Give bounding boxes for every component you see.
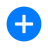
button[interactable]: Add — [0, 0, 48, 48]
